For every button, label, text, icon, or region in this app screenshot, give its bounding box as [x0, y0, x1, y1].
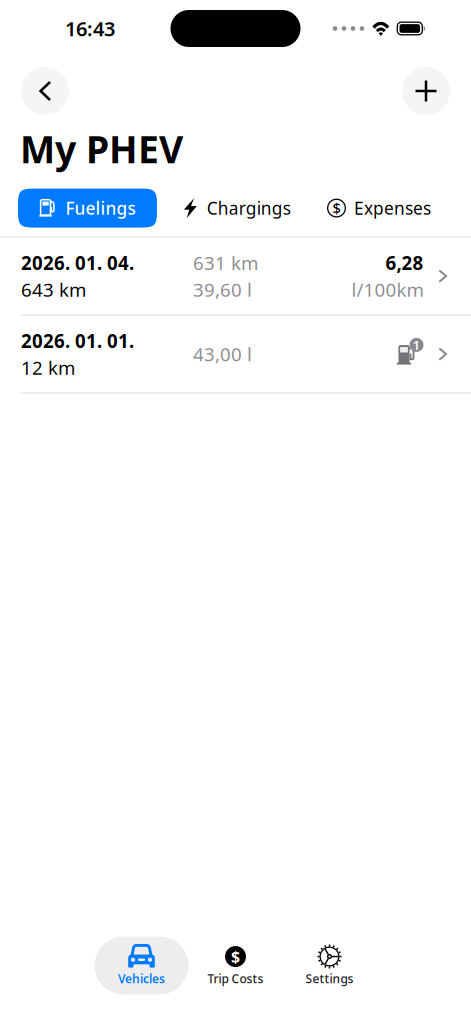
button[interactable]: 2026. 01. 04. [0, 238, 471, 316]
button[interactable]: $ [188, 936, 282, 994]
staticText: 2026. 01. 01. [21, 328, 134, 353]
staticText: Trip Costs [207, 970, 263, 986]
staticText: Expenses [354, 197, 431, 220]
staticText: My PHEV [20, 124, 183, 174]
button[interactable]: Fuelings [18, 189, 157, 228]
staticText: Chargings [207, 197, 291, 220]
button[interactable]: Chargings [183, 189, 301, 228]
staticText: 2026. 01. 04. [21, 250, 134, 275]
staticText: 1 [412, 336, 420, 354]
button[interactable]: Back [21, 67, 69, 115]
button[interactable]: 2026. 01. 01. [0, 316, 471, 394]
staticText: 6,28 [385, 250, 423, 275]
button[interactable]: Settings [282, 936, 376, 994]
button[interactable]: Add [402, 67, 450, 115]
staticText: 39,60 l [193, 277, 252, 302]
staticText: 643 km [21, 277, 86, 302]
staticText: $ [332, 198, 340, 218]
staticText: $ [231, 946, 240, 967]
staticText: 16:43 [65, 15, 115, 42]
staticText: 43,00 l [193, 342, 252, 366]
staticText: 12 km [21, 355, 75, 380]
staticText: Settings [305, 970, 353, 986]
button[interactable]: Vehicles [94, 936, 188, 994]
staticText: l/100km [351, 277, 423, 302]
button[interactable]: $ [327, 189, 439, 228]
staticText: Fuelings [65, 197, 135, 220]
staticText: Vehicles [118, 970, 165, 986]
staticText: 631 km [193, 250, 258, 275]
